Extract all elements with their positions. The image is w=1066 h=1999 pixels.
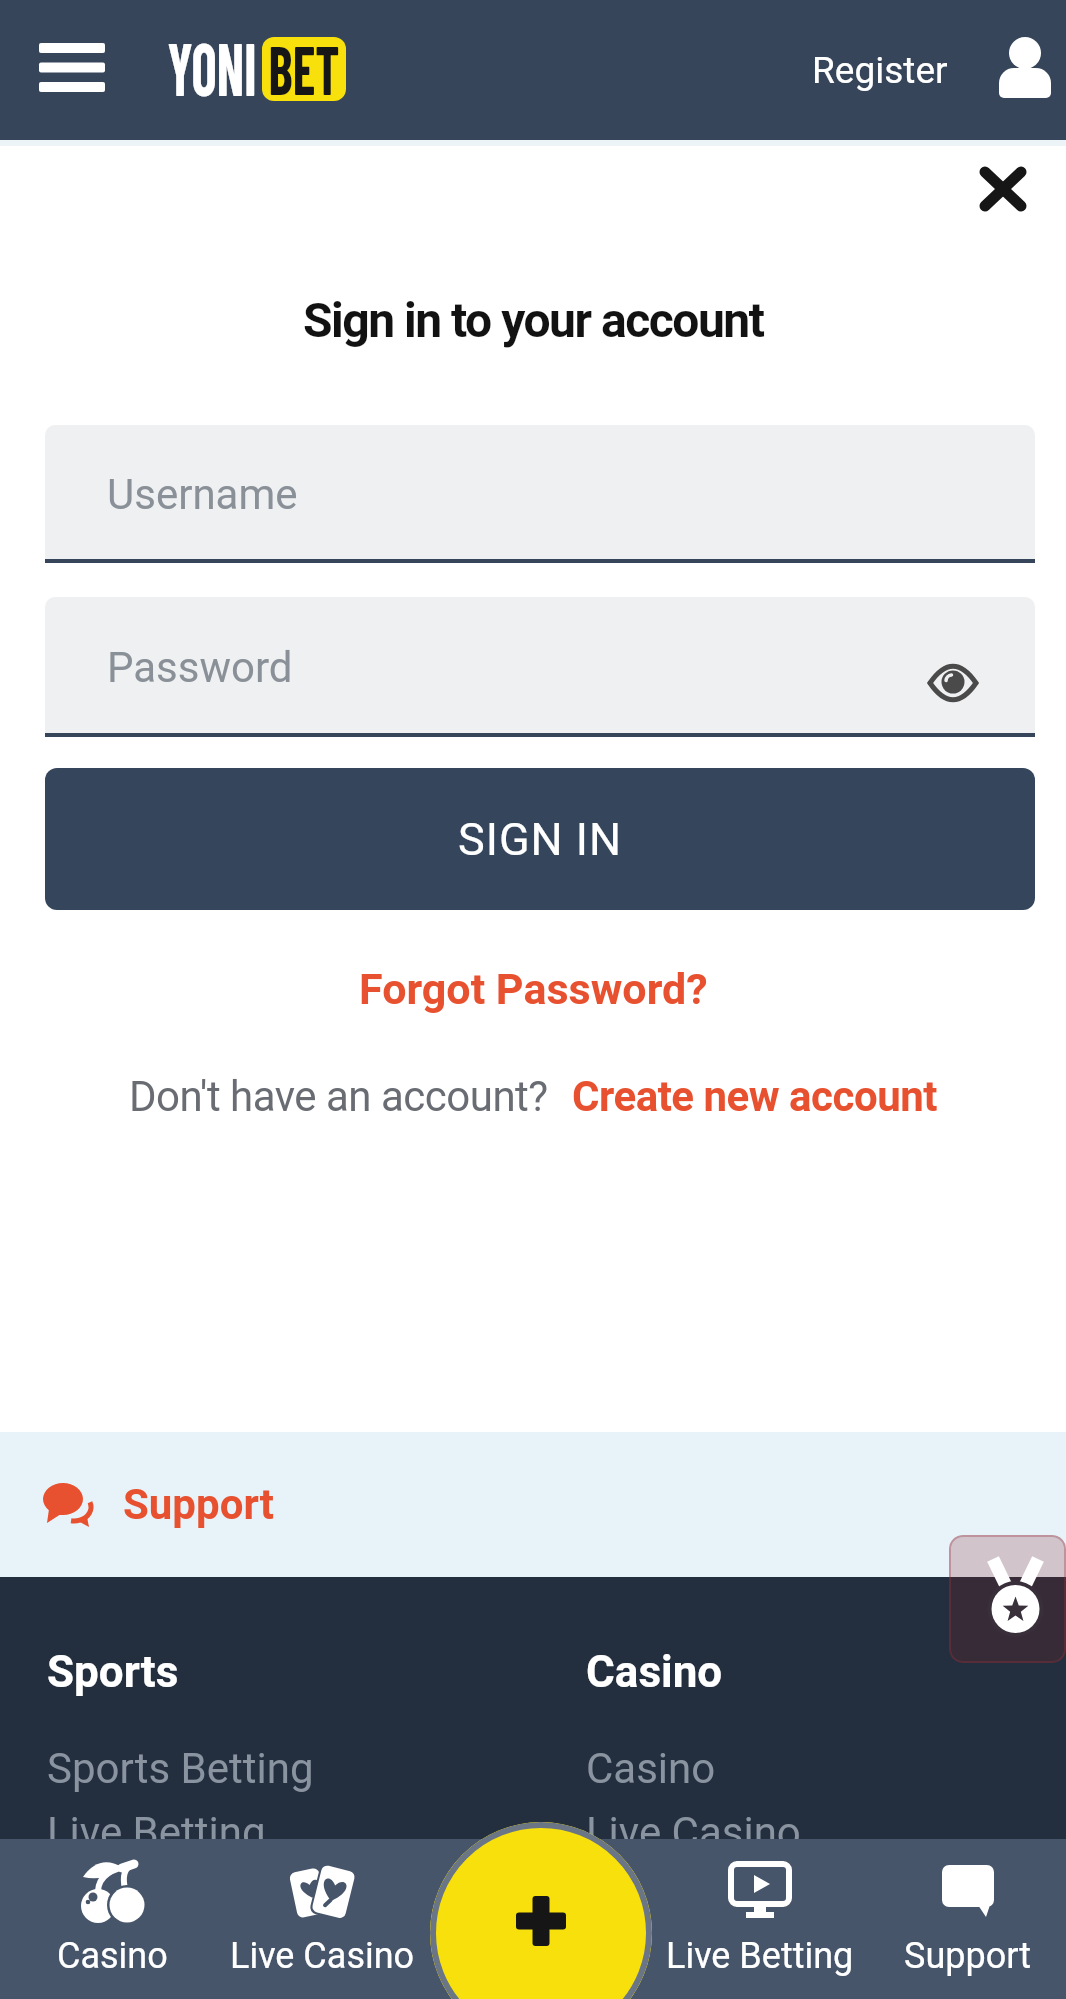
staticText: Live Casino [230,1935,415,1977]
button[interactable]: Support [858,1839,1066,1999]
staticText: BET [262,37,346,101]
button[interactable]: Live Casino [212,1839,432,1999]
staticText: Don't have an account? [129,1072,548,1121]
staticText: Support [904,1935,1032,1977]
staticText: Sign in to your account [303,292,764,348]
staticText: Casino [57,1935,168,1977]
button[interactable]: Create new account [572,1072,937,1121]
button[interactable] [968,154,1038,224]
staticText: Sports [47,1646,179,1698]
staticText: Support [123,1480,274,1529]
staticText: Create new account [572,1072,937,1121]
button[interactable] [992,30,1058,106]
staticText: Live Betting [666,1935,854,1977]
staticText: Register [812,49,948,92]
button[interactable]: SIGN IN [45,768,1035,910]
staticText: Casino [586,1646,723,1698]
button[interactable] [923,657,983,709]
staticText: YONI [120,21,304,151]
button[interactable] [430,1822,652,1999]
staticText: Forgot Password? [359,964,708,1014]
button[interactable]: Live Betting [650,1839,870,1999]
button[interactable]: Forgot Password? [333,958,733,1020]
staticText: Live Casino [586,1808,801,1857]
staticText: SIGN IN [458,813,623,866]
staticText: Live Betting [47,1808,266,1857]
button[interactable]: Casino [2,1839,222,1999]
staticText: Username [107,470,298,519]
button[interactable] [949,1535,1066,1663]
staticText: Casino [586,1744,716,1793]
button[interactable]: Support [43,1432,274,1577]
staticText: Sports Betting [47,1744,314,1793]
button[interactable]: Register [790,36,970,104]
staticText: Password [107,643,293,692]
button[interactable]: YONI [166,34,346,104]
button[interactable] [30,36,114,108]
